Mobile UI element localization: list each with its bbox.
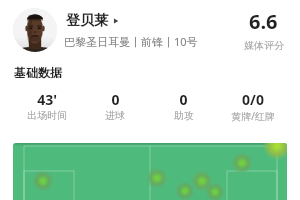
button[interactable]: 0	[81, 90, 149, 122]
staticText: 出场时间	[27, 109, 67, 122]
button[interactable]: 0	[149, 90, 218, 122]
staticText: 登贝莱	[66, 12, 108, 30]
staticText: 0	[111, 90, 120, 109]
staticText: 43'	[37, 90, 57, 109]
staticText: 巴黎圣日耳曼丨前锋丨10号	[64, 34, 198, 49]
staticText: 6.6	[249, 8, 278, 35]
button[interactable]: Player photo	[13, 8, 57, 52]
button[interactable]: 6.6	[235, 8, 292, 52]
staticText: 黄牌/红牌	[231, 109, 275, 123]
staticText: 0/0	[242, 90, 264, 109]
staticText: 媒体评分	[244, 39, 284, 52]
button[interactable]: 登贝莱	[66, 12, 119, 30]
staticText: 进球	[105, 109, 125, 122]
button[interactable]: 43'	[13, 90, 81, 122]
button[interactable]: Heat map	[13, 143, 287, 200]
staticText: 助攻	[174, 109, 194, 122]
staticText: 基础数据	[14, 65, 62, 80]
staticText: 0	[179, 90, 188, 109]
button[interactable]: 0/0	[218, 90, 287, 123]
